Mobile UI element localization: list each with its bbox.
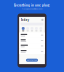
staticText: Today <box>20 18 29 22</box>
button[interactable] <box>35 27 38 31</box>
staticText: Get started <box>27 59 37 61</box>
button[interactable] <box>26 27 29 31</box>
button[interactable] <box>19 43 45 49</box>
button[interactable] <box>31 27 33 31</box>
button[interactable]: Get started <box>26 59 38 62</box>
button[interactable] <box>19 38 45 43</box>
staticText: Track, plan and get things done <box>21 8 42 10</box>
staticText: Everything in one place <box>14 4 50 7</box>
button[interactable] <box>19 49 45 54</box>
button[interactable] <box>22 27 25 31</box>
button[interactable] <box>19 32 45 38</box>
button[interactable] <box>39 27 42 31</box>
